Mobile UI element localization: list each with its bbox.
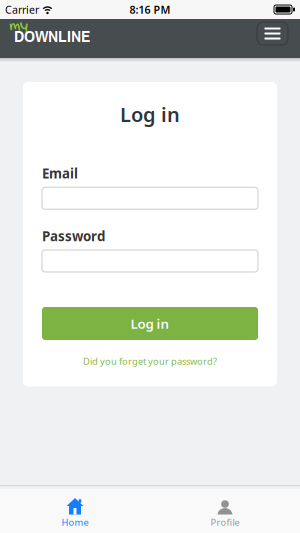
staticText: DOWNLINE: [14, 24, 90, 47]
button[interactable]: Menu: [257, 22, 288, 45]
staticText: Profile: [210, 516, 239, 528]
textField[interactable]: Email: [48, 183, 252, 213]
staticText: Did you forget your password?: [83, 355, 217, 367]
button[interactable]: Did you forget your password?: [42, 355, 258, 367]
textField[interactable]: Password: [48, 246, 252, 276]
button[interactable]: Home: [0, 486, 150, 528]
staticText: 8:16 PM: [129, 2, 170, 17]
staticText: Log in: [120, 101, 180, 128]
staticText: Log in: [130, 315, 169, 332]
staticText: Carrier: [5, 2, 39, 17]
staticText: my: [9, 17, 28, 36]
staticText: Home: [61, 516, 88, 528]
staticText: Email: [42, 165, 78, 182]
button[interactable]: Profile: [150, 486, 300, 528]
button[interactable]: Log in: [42, 307, 258, 340]
staticText: Password: [42, 227, 105, 245]
